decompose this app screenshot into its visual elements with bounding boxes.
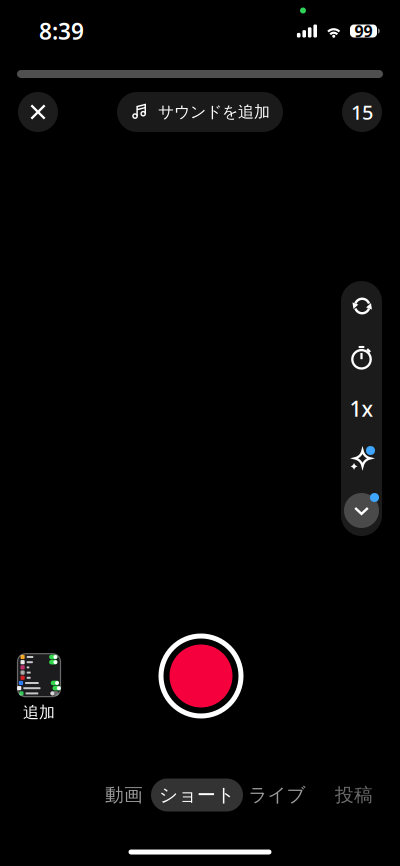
button[interactable]: Timer [341, 331, 382, 383]
button[interactable]: 動画 [98, 778, 150, 811]
staticText: 投稿 [335, 783, 373, 806]
staticText: 1x [349, 394, 373, 423]
button[interactable]: Record [157, 632, 245, 720]
button[interactable]: Flip camera [341, 281, 382, 331]
button[interactable]: ライブ [248, 778, 306, 811]
staticText: ショート [159, 783, 235, 806]
staticText: ライブ [248, 783, 305, 806]
staticText: サウンドを追加 [158, 102, 270, 122]
staticText: 追加 [23, 703, 55, 722]
staticText: 動画 [105, 783, 143, 806]
button[interactable]: 追加 [6, 648, 72, 728]
button[interactable]: Playback speed [341, 383, 382, 434]
staticText: 8:39 [39, 16, 84, 46]
staticText: 99 [354, 20, 372, 42]
button[interactable]: Close [18, 92, 58, 132]
button[interactable]: ショート [151, 778, 243, 811]
button[interactable]: 投稿 [328, 778, 380, 811]
button[interactable]: Effects [341, 434, 382, 485]
button[interactable]: More options [341, 485, 382, 536]
staticText: 15 [351, 99, 373, 125]
button[interactable]: サウンドを追加 [117, 92, 283, 132]
button[interactable]: Recording length 15 seconds [342, 92, 382, 132]
